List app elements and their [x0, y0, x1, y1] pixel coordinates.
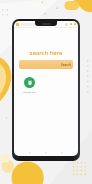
button[interactable]: Nav item 1 — [22, 152, 38, 154]
staticText: Current Loc — [22, 90, 36, 93]
staticText: search here — [14, 49, 78, 57]
button[interactable]: Nav item 2 — [38, 152, 54, 154]
button[interactable]: Current Location — [20, 75, 38, 95]
button[interactable]: Nav item 3 — [54, 152, 70, 154]
staticText: Search — [61, 63, 71, 67]
button[interactable]: Search — [19, 60, 73, 69]
